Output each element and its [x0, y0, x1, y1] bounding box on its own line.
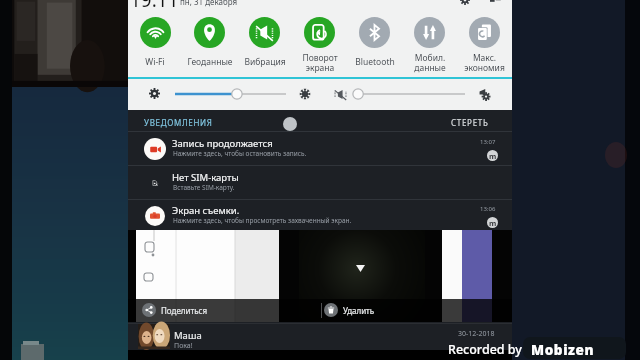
staticText: Экран съемки.	[172, 204, 240, 217]
staticText: 13:06	[480, 205, 496, 213]
button[interactable]: Wi-Fi	[128, 16, 182, 78]
staticText: Нет SIM-карты	[172, 171, 239, 184]
staticText: 19:11	[130, 0, 179, 13]
button[interactable]: Вибрация	[237, 16, 292, 78]
staticText: Маша	[174, 329, 202, 342]
staticText: 30-12-2018	[458, 329, 495, 339]
staticText: Mobizen	[531, 341, 595, 359]
staticText: Запись продолжается	[172, 137, 273, 150]
staticText: Поделиться	[161, 305, 208, 316]
staticText: Bluetooth	[355, 56, 395, 68]
staticText: Recorded by	[448, 341, 522, 358]
button[interactable]: Brightness	[295, 84, 315, 104]
button[interactable]: Макс. экономия	[457, 16, 512, 78]
button[interactable]: Collapse	[283, 117, 297, 131]
staticText: Мобил. данные	[414, 52, 446, 73]
staticText: 13:07	[480, 138, 496, 146]
button[interactable]	[175, 88, 286, 100]
button[interactable]: Маша	[128, 322, 512, 350]
button[interactable]: Поделиться	[128, 299, 320, 322]
button[interactable]: Мобил. данные	[402, 16, 457, 78]
button[interactable]: Запись продолжается	[128, 132, 512, 165]
button[interactable]: Bluetooth	[347, 16, 402, 78]
button[interactable]	[355, 88, 465, 100]
staticText: Макс. экономия	[464, 52, 505, 73]
button[interactable]: Экран съемки.	[128, 200, 512, 231]
staticText: Удалить	[343, 305, 375, 316]
button[interactable]: Mute	[330, 84, 351, 105]
staticText: Wi-Fi	[145, 56, 165, 68]
staticText: m	[489, 151, 497, 161]
button[interactable]: Геоданные	[182, 16, 237, 78]
button[interactable]: Поворот экрана	[292, 16, 347, 78]
button[interactable]: Нет SIM-карты	[128, 166, 512, 199]
staticText: Вставьте SIM-карту.	[173, 183, 235, 192]
button[interactable]: Auto brightness	[145, 84, 164, 103]
staticText: Нажмите здесь, чтобы остановить запись.	[173, 149, 307, 158]
staticText: Геоданные	[187, 56, 233, 68]
staticText: Пока!	[174, 341, 193, 351]
button[interactable]: СТЕРЕТЬ	[447, 113, 493, 132]
staticText: Нажмите здесь, чтобы просмотреть захваче…	[173, 216, 352, 225]
staticText: СТЕРЕТЬ	[451, 117, 489, 128]
staticText: Поворот экрана	[302, 52, 338, 73]
staticText: Вибрация	[244, 56, 286, 68]
staticText: m	[489, 218, 497, 228]
button[interactable]: Удалить	[321, 299, 512, 322]
button[interactable]: Volume	[474, 84, 495, 105]
staticText: пн, 31 декабря	[180, 0, 238, 7]
staticText: УВЕДОМЛЕНИЯ	[144, 117, 213, 128]
